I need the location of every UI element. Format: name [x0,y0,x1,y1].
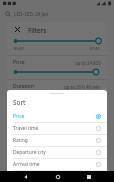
button[interactable]: Back [20,171,31,182]
button[interactable]: Arrival time [7,159,107,170]
button[interactable]: Home [52,171,63,182]
staticText: Rating [13,137,96,144]
staticText: up to 26 h 46 min [64,84,101,90]
staticText: Price [13,59,25,66]
button[interactable]: Travel time [7,123,107,134]
staticText: Filters [28,26,47,34]
button[interactable]: Airports [7,104,107,117]
staticText: Departure city [13,149,96,156]
staticText: 05:40 [14,46,24,51]
staticText: Travel time [13,125,96,132]
staticText: Duration [13,83,34,90]
button[interactable]: Recents [83,171,94,182]
staticText: 07:40 [90,46,100,51]
staticText: LED–LED, 24 Jan [14,11,49,17]
button[interactable]: Close [13,25,22,34]
button[interactable]: Departure city [7,147,107,158]
staticText: Sort [13,98,26,107]
staticText: up to 24 605 [75,60,101,66]
button[interactable]: Rating [7,135,107,146]
button[interactable]: LED–LED, 24 Jan [0,7,114,20]
staticText: Arrival time [13,161,96,168]
staticText: Price [13,113,96,120]
button[interactable]: Price [7,111,107,122]
